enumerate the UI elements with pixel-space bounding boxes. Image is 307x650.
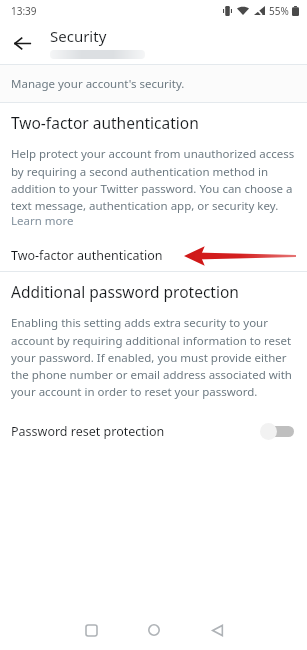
button[interactable]: Two-factor authentication	[0, 240, 307, 271]
button[interactable]: Recents	[69, 610, 113, 650]
staticText: 13:39	[11, 4, 37, 18]
button[interactable]: Back	[6, 27, 38, 59]
staticText: Manage your account's security.	[11, 76, 185, 92]
staticText: Enabling this setting adds extra securit…	[11, 315, 295, 399]
staticText: Password reset protection	[11, 423, 165, 440]
button[interactable]: Home	[132, 610, 176, 650]
staticText: Two-factor authentication	[11, 247, 163, 264]
staticText: Learn more	[11, 213, 74, 229]
staticText: Help protect your account from unauthori…	[11, 146, 295, 213]
staticText: Two-factor authentication	[11, 112, 199, 133]
staticText: Security	[50, 26, 107, 46]
button[interactable]: Learn more	[11, 213, 74, 229]
button[interactable]: Password reset protection	[0, 414, 307, 448]
staticText: 55%	[269, 4, 289, 18]
button[interactable]: Password reset protection toggle	[260, 421, 294, 441]
staticText: Additional password protection	[11, 281, 239, 302]
button[interactable]: Back	[195, 610, 239, 650]
